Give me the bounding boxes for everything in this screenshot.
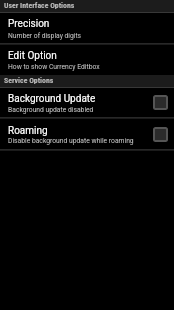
button[interactable]: Roaming bbox=[0, 119, 174, 149]
staticText: Edit Option bbox=[8, 50, 57, 62]
staticText: Service Options bbox=[4, 76, 54, 85]
staticText: Background Update bbox=[8, 93, 96, 105]
staticText: Disable background update while roaming bbox=[8, 137, 134, 145]
staticText: Precision bbox=[8, 18, 50, 30]
staticText: How to show Currency Editbox bbox=[8, 63, 100, 71]
button[interactable]: Precision bbox=[0, 13, 174, 43]
button[interactable]: Edit Option bbox=[0, 45, 174, 75]
button[interactable]: Background Update bbox=[0, 88, 174, 117]
staticText: Number of display digits bbox=[8, 32, 82, 40]
staticText: Background update disabled bbox=[8, 106, 94, 114]
staticText: User Interface Options bbox=[4, 1, 75, 10]
staticText: Roaming bbox=[8, 125, 48, 137]
